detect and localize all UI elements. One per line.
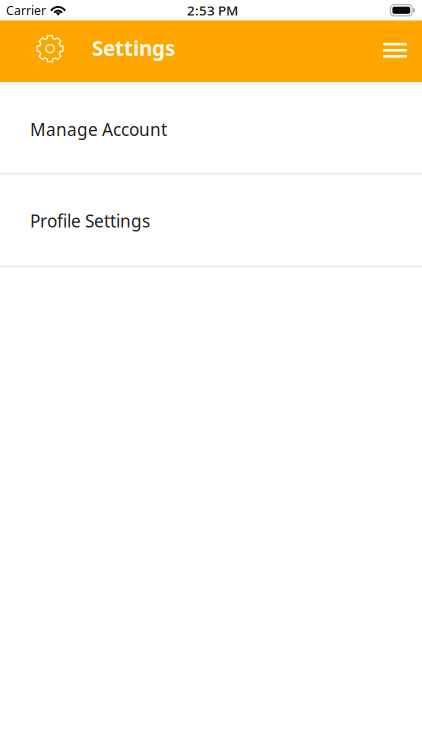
button[interactable]: Menu: [375, 21, 415, 81]
button[interactable]: Settings: [25, 21, 75, 81]
staticText: Settings: [92, 34, 175, 62]
button[interactable]: Settings: [75, 21, 175, 81]
button[interactable]: Profile Settings: [0, 175, 422, 266]
staticText: Manage Account: [30, 118, 167, 141]
staticText: Profile Settings: [30, 209, 150, 232]
button[interactable]: Manage Account: [0, 83, 422, 173]
staticText: 2:53 PM: [187, 1, 238, 19]
staticText: Carrier: [6, 2, 46, 19]
